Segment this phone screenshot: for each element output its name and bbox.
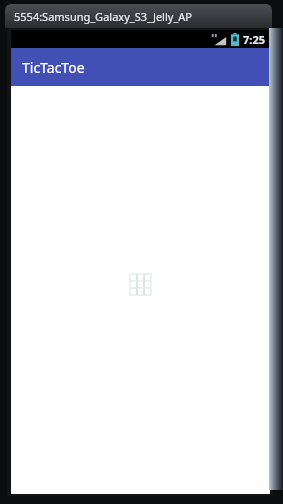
button[interactable]: Tic tac toe board	[130, 274, 151, 295]
button[interactable]: TicTacToe	[11, 48, 270, 86]
staticText: 7:25	[243, 32, 265, 47]
staticText: TicTacToe	[22, 58, 85, 77]
staticText: 5554:Samsung_Galaxy_S3_Jelly_AP	[14, 9, 192, 24]
